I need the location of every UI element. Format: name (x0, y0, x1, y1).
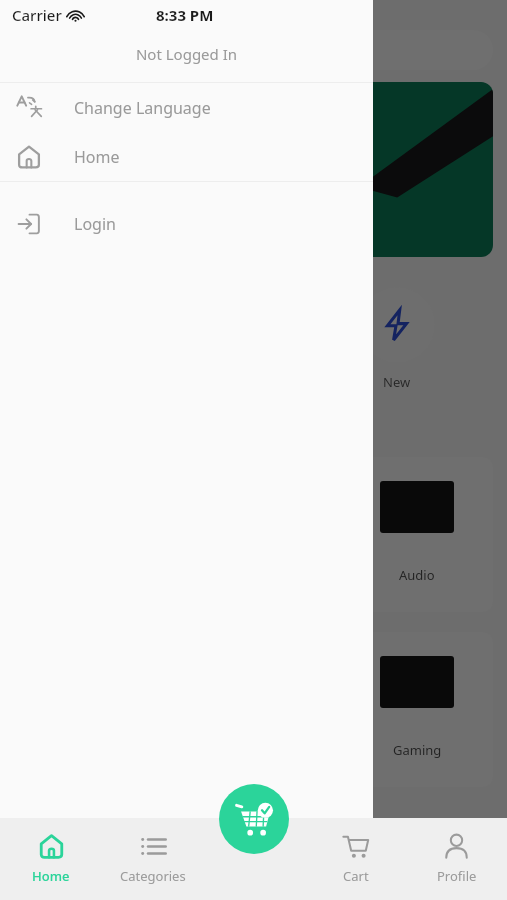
staticText: 8:33 PM (156, 5, 214, 25)
button[interactable]: Audio (341, 457, 493, 612)
button[interactable]: evo (14, 82, 493, 257)
button[interactable]: Categories (102, 818, 204, 900)
staticText: Carrier (12, 5, 62, 25)
button[interactable]: Home (0, 818, 102, 900)
button[interactable]: Gaming (341, 632, 493, 787)
staticText: Profile (437, 867, 477, 885)
staticText: Home (74, 146, 120, 168)
staticText: Not Logged In (0, 44, 373, 64)
button[interactable]: Profile (406, 818, 507, 900)
button[interactable]: New (353, 281, 441, 397)
button[interactable]: Change Language (0, 83, 373, 132)
button[interactable]: Cart (305, 818, 406, 900)
button[interactable]: Login (0, 199, 373, 248)
staticText: Gaming (393, 741, 442, 759)
staticText: Cart (343, 867, 369, 885)
staticText: Login (74, 213, 116, 235)
staticText: Categories (120, 867, 186, 885)
button[interactable]: Cart checkout (219, 784, 289, 854)
staticText: Home (32, 867, 70, 885)
button[interactable] (14, 30, 493, 70)
staticText: Change Language (74, 97, 211, 119)
staticText: Audio (399, 566, 435, 584)
button[interactable]: Cameras (177, 632, 329, 787)
button[interactable]: Home (0, 132, 373, 181)
staticText: New (383, 373, 411, 391)
